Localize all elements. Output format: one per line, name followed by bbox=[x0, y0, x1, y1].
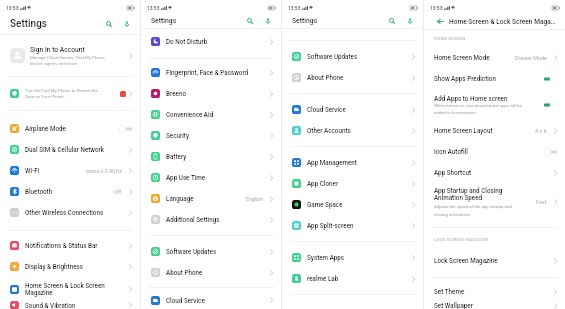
staticText: Adjusts the speed of the app startup and… bbox=[434, 204, 512, 217]
button[interactable]: Search bbox=[244, 15, 256, 27]
staticText: App Use Time bbox=[166, 174, 270, 181]
staticText: Turn On Find My Phone to Protect the Dat… bbox=[25, 88, 98, 99]
button[interactable]: Back bbox=[437, 18, 444, 25]
staticText: Breeno bbox=[166, 90, 270, 97]
button[interactable]: Cloud Service bbox=[141, 291, 281, 309]
button[interactable]: Set Wallpaper bbox=[424, 302, 565, 309]
button[interactable]: Voice search bbox=[404, 15, 416, 27]
staticText: Game Space bbox=[307, 201, 412, 208]
staticText: Battery bbox=[166, 153, 270, 160]
staticText: App Startup and Closing Animation Speed bbox=[434, 187, 503, 202]
button[interactable]: Home Screen Layout bbox=[424, 120, 565, 141]
staticText: Dual SIM & Cellular Network bbox=[25, 146, 129, 153]
button[interactable]: About Phone bbox=[141, 262, 281, 283]
staticText: Fast bbox=[536, 199, 547, 205]
button[interactable]: App Startup and Closing Animation Speed bbox=[424, 183, 565, 221]
button[interactable]: Other Wireless Connections bbox=[0, 202, 140, 223]
staticText: 13:53 bbox=[147, 5, 160, 11]
staticText: Home Screen & Lock Screen Magazine bbox=[25, 282, 105, 297]
button[interactable]: App Shortcut bbox=[424, 162, 565, 183]
button[interactable]: Voice search bbox=[121, 18, 133, 30]
staticText: realme Lab bbox=[307, 275, 412, 282]
staticText: App Cloner bbox=[307, 180, 412, 187]
button[interactable]: Breeno bbox=[141, 83, 281, 104]
button[interactable]: Search bbox=[103, 18, 115, 30]
button[interactable]: Switch on bbox=[544, 75, 557, 83]
staticText: 13:53 bbox=[288, 5, 301, 11]
staticText: Manage Cloud Service, Find My Phone, dev… bbox=[30, 55, 106, 66]
button[interactable]: Icon Autofill bbox=[424, 141, 565, 162]
staticText: Add Apps to Home screen bbox=[434, 95, 508, 102]
staticText: arena-2-2.4GHz bbox=[86, 168, 122, 174]
button[interactable]: System Apps bbox=[282, 247, 423, 268]
button[interactable]: Game Space bbox=[282, 194, 423, 215]
staticText: English bbox=[246, 196, 263, 202]
staticText: 4 x 6 bbox=[535, 128, 547, 134]
staticText: Software Updates bbox=[307, 53, 412, 60]
staticText: Do Not Disturb bbox=[166, 38, 270, 45]
button[interactable]: Switch off bbox=[119, 125, 132, 133]
button[interactable]: Add Apps to Home screen bbox=[424, 89, 565, 120]
button[interactable]: Display & Brightness bbox=[0, 256, 140, 277]
button[interactable]: Dual SIM & Cellular Network bbox=[0, 139, 140, 160]
staticText: Wi-Fi bbox=[25, 167, 86, 174]
staticText: Cloud Service bbox=[166, 297, 270, 304]
button[interactable]: Switch off bbox=[544, 148, 557, 156]
button[interactable]: Do Not Disturb bbox=[141, 31, 281, 52]
button[interactable]: Search bbox=[386, 15, 398, 27]
staticText: Set Wallpaper bbox=[434, 302, 554, 309]
button[interactable]: Security bbox=[141, 125, 281, 146]
staticText: Drawer Mode bbox=[515, 55, 547, 61]
button[interactable]: Switch on bbox=[544, 101, 557, 109]
button[interactable]: App Use Time bbox=[141, 167, 281, 188]
staticText: Display & Brightness bbox=[25, 263, 129, 270]
button[interactable]: Set Theme bbox=[424, 281, 565, 302]
staticText: LOCK SCREEN MAGAZINE bbox=[434, 237, 489, 242]
button[interactable]: App Cloner bbox=[282, 173, 423, 194]
button[interactable]: Home Screen Mode bbox=[424, 47, 565, 68]
button[interactable]: Bluetooth bbox=[0, 181, 140, 202]
staticText: Other Wireless Connections bbox=[25, 209, 129, 216]
staticText: About Phone bbox=[307, 74, 412, 81]
button[interactable]: Notifications & Status Bar bbox=[0, 235, 140, 256]
staticText: Cloud Service bbox=[307, 106, 412, 113]
staticText: Lock Screen Magazine bbox=[434, 257, 554, 264]
staticText: Software Updates bbox=[166, 248, 270, 255]
button[interactable]: Turn On Find My Phone to Protect the Dat… bbox=[0, 77, 140, 110]
staticText: Convenience Aid bbox=[166, 111, 270, 118]
staticText: Settings bbox=[292, 17, 318, 25]
button[interactable]: Airplane Mode bbox=[0, 118, 140, 139]
button[interactable]: Software Updates bbox=[141, 241, 281, 262]
button[interactable]: Voice search bbox=[262, 15, 274, 27]
button[interactable]: Other Accounts bbox=[282, 120, 423, 141]
button[interactable]: App Management bbox=[282, 152, 423, 173]
button[interactable]: Fingerprint, Face & Password bbox=[141, 62, 281, 83]
staticText: 13:53 bbox=[6, 5, 19, 11]
button[interactable]: Home Screen & Lock Screen Magazine bbox=[0, 277, 140, 301]
staticText: 13:53 bbox=[430, 5, 443, 11]
staticText: Language bbox=[166, 195, 246, 202]
staticText: Security bbox=[166, 132, 270, 139]
button[interactable]: Additional Settings bbox=[141, 209, 281, 230]
button[interactable]: Battery bbox=[141, 146, 281, 167]
button[interactable]: Lock Screen Magazine bbox=[424, 250, 565, 271]
staticText: Off bbox=[114, 189, 122, 195]
staticText: HOME SCREEN bbox=[434, 36, 466, 41]
button[interactable]: Language bbox=[141, 188, 281, 209]
button[interactable]: realme Lab bbox=[282, 268, 423, 289]
staticText: Bluetooth bbox=[25, 188, 114, 195]
staticText: Home Screen & Lock Screen Maga… bbox=[449, 18, 556, 26]
button[interactable]: Convenience Aid bbox=[141, 104, 281, 125]
button[interactable]: Show Apps Prediction bbox=[424, 68, 565, 89]
button[interactable]: Wi-Fi bbox=[0, 160, 140, 181]
staticText: Set Theme bbox=[434, 288, 554, 295]
button[interactable]: Sound & Vibration bbox=[0, 301, 140, 309]
button[interactable]: App Split-screen bbox=[282, 215, 423, 236]
button[interactable]: Sign In to Account bbox=[0, 35, 140, 76]
button[interactable]: About Phone bbox=[282, 67, 423, 88]
staticText: Home Screen Mode bbox=[434, 54, 515, 61]
button[interactable]: Software Updates bbox=[282, 46, 423, 67]
staticText: Home Screen Layout bbox=[434, 127, 535, 134]
staticText: When turned on, new downloaded apps will… bbox=[434, 103, 523, 115]
button[interactable]: Cloud Service bbox=[282, 99, 423, 120]
